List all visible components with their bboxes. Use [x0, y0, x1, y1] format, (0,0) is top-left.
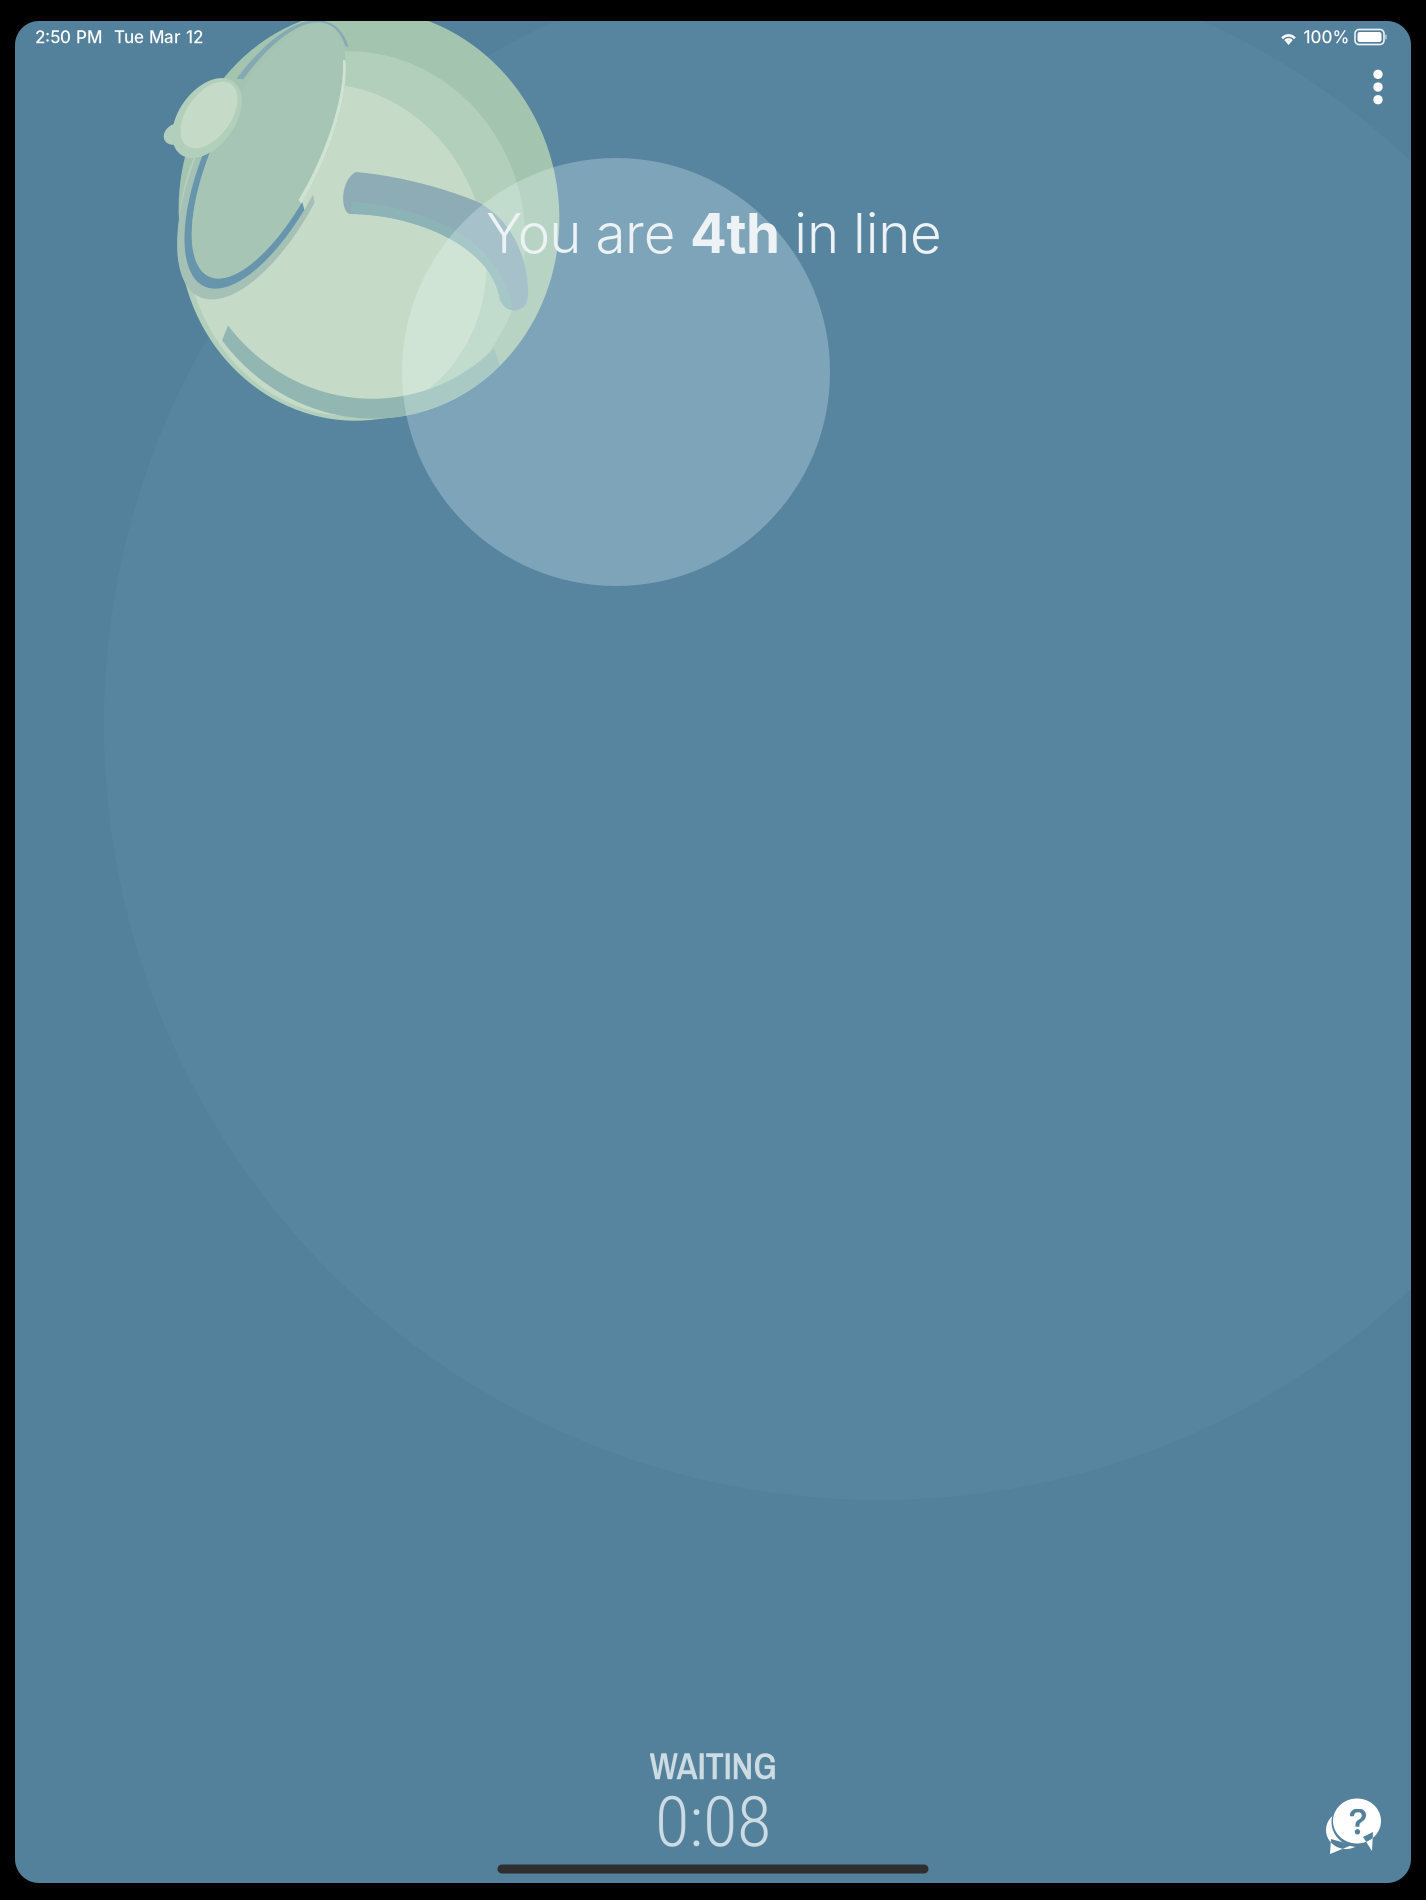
staticText: 100%	[1303, 27, 1349, 47]
staticText: ?	[1348, 1801, 1367, 1843]
staticText: Tue Mar 12	[114, 27, 203, 47]
staticText: 0:08	[655, 1781, 771, 1863]
button[interactable]: Help	[1319, 1793, 1389, 1861]
button[interactable]: More options	[1348, 57, 1408, 117]
staticText: You are 4th in line	[486, 201, 942, 265]
staticText: 2:50 PM	[35, 27, 102, 47]
staticText: WAITING	[649, 1741, 776, 1791]
